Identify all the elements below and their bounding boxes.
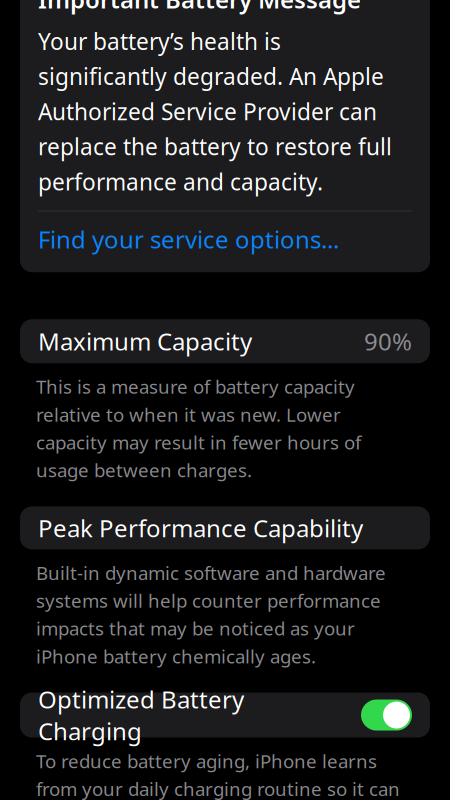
- staticText: Your battery’s health is significantly d…: [38, 26, 392, 197]
- staticText: Important Battery Message: [38, 0, 361, 15]
- button[interactable]: Optimized Battery Charging: [20, 693, 430, 738]
- staticText: Built-in dynamic software and hardware s…: [36, 560, 386, 669]
- staticText: 90%: [364, 325, 412, 357]
- staticText: Peak Performance Capability: [38, 512, 363, 544]
- button[interactable]: Maximum Capacity: [20, 319, 430, 363]
- staticText: Find your service options...: [38, 223, 339, 255]
- button[interactable]: Find your service options...: [38, 211, 412, 267]
- staticText: This is a measure of battery capacity re…: [36, 374, 361, 482]
- staticText: Maximum Capacity: [38, 325, 252, 357]
- staticText: To reduce battery aging, iPhone learns f…: [36, 749, 402, 800]
- staticText: Optimized Battery Charging: [38, 683, 244, 747]
- button[interactable]: Peak Performance Capability: [20, 506, 430, 549]
